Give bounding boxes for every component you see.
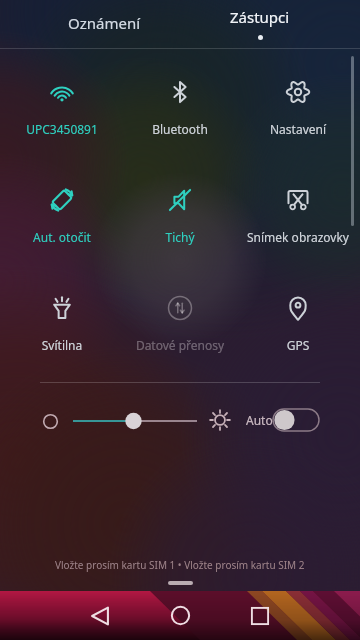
staticText: Aut. otočit [3, 229, 121, 245]
staticText: Tichý [121, 229, 239, 245]
staticText: UPC3450891 [3, 121, 121, 137]
button[interactable]: Nastavení [239, 53, 357, 153]
staticText: Svítilna [3, 337, 121, 353]
button[interactable]: Back [70, 591, 130, 640]
other: Minimum brightness [42, 413, 59, 430]
button[interactable]: GPS [239, 269, 357, 369]
button[interactable]: Zástupci [200, 0, 320, 48]
staticText: Vložte prosím kartu SIM 1 • Vložte prosí… [55, 558, 305, 572]
staticText: Datové přenosy [121, 337, 239, 353]
other: Maximum brightness [209, 409, 231, 431]
button[interactable]: Brightness [63, 408, 207, 434]
staticText: GPS [239, 337, 357, 353]
button[interactable]: Bluetooth [121, 53, 239, 153]
staticText: Bluetooth [121, 121, 239, 137]
staticText: Nastavení [239, 121, 357, 137]
staticText: Zástupci [230, 7, 290, 27]
button[interactable]: Auto [242, 404, 322, 436]
button[interactable]: Svítilna [3, 269, 121, 369]
button[interactable]: Tichý [121, 161, 239, 261]
button[interactable]: UPC3450891 [3, 53, 121, 153]
staticText: Oznámení [68, 13, 141, 33]
button[interactable]: Home [150, 591, 210, 640]
staticText: Auto [246, 412, 273, 428]
button[interactable]: Oznámení [44, 0, 164, 48]
button[interactable]: Datové přenosy [121, 269, 239, 369]
button[interactable]: Snímek obrazovky [239, 161, 357, 261]
staticText: Snímek obrazovky [239, 229, 357, 245]
button[interactable]: Recent apps [230, 591, 290, 640]
button[interactable]: Aut. otočit [3, 161, 121, 261]
button[interactable]: Collapse panel [168, 581, 193, 585]
